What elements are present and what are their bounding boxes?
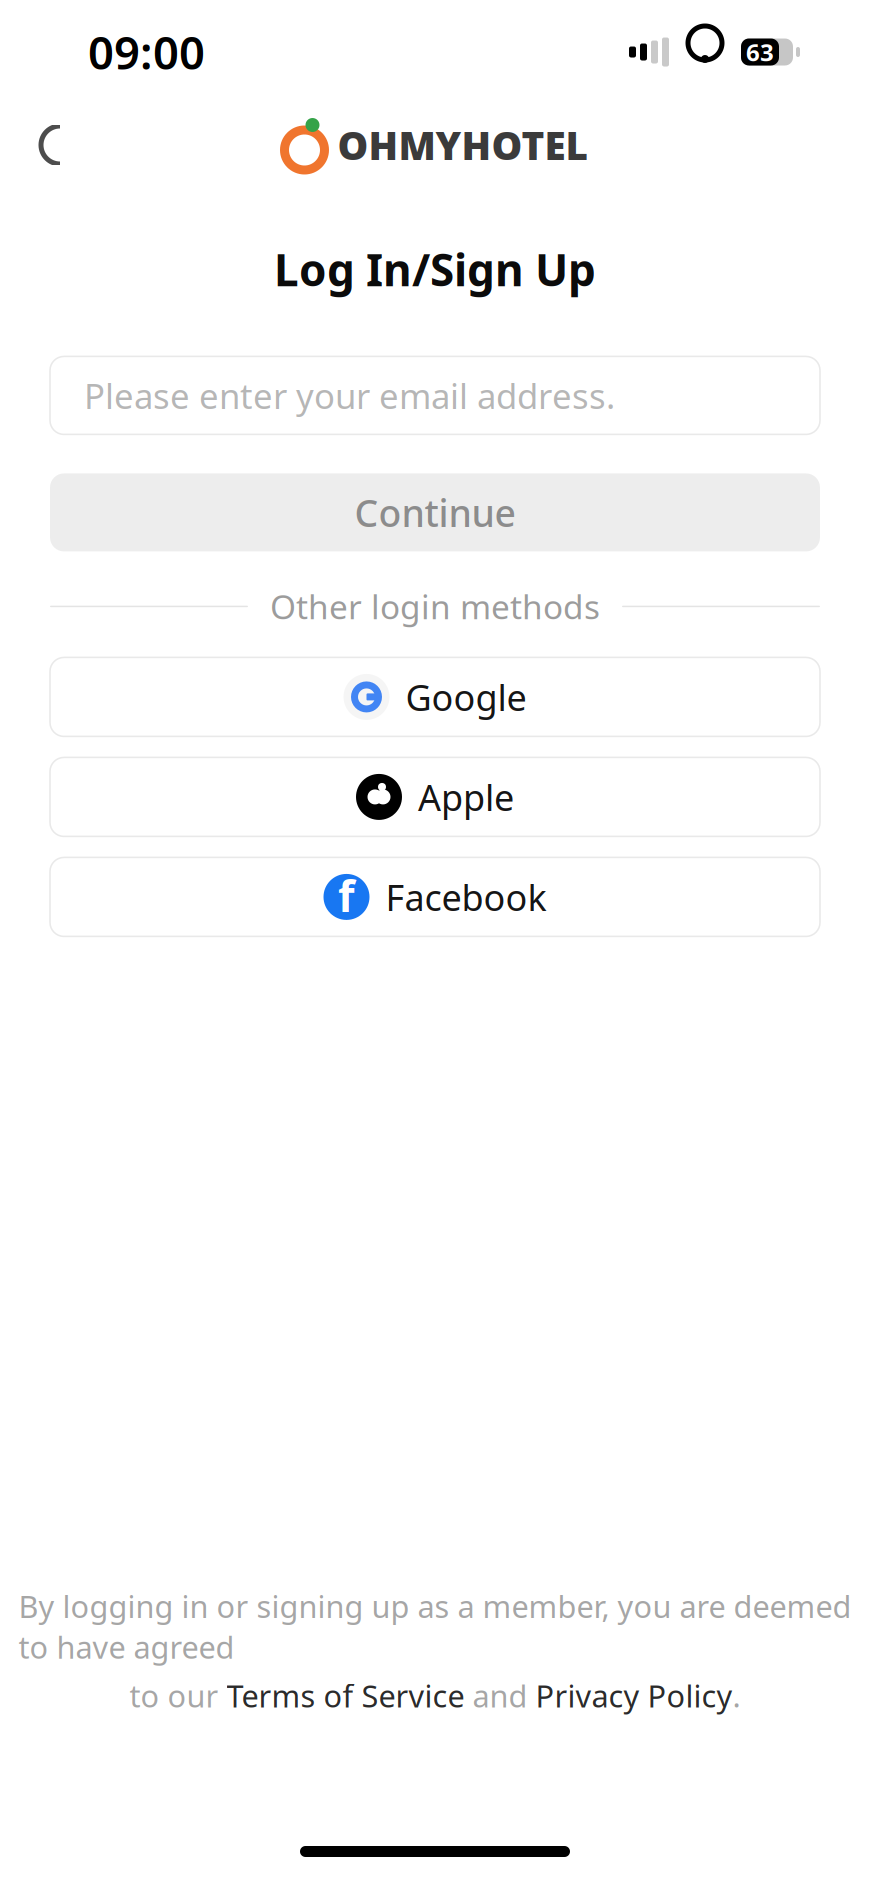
staticText: Apple: [418, 773, 514, 821]
staticText: Continue: [354, 488, 515, 537]
staticText: 63: [746, 36, 774, 68]
staticText: Facebook: [385, 873, 546, 921]
staticText: Log In/Sign Up: [274, 240, 596, 298]
staticText: .: [732, 1675, 740, 1716]
button[interactable]: Privacy Policy: [535, 1675, 732, 1716]
staticText: Google: [405, 673, 526, 721]
button[interactable]: Continue: [0, 473, 870, 551]
staticText: Please enter your email address.: [84, 372, 615, 418]
button[interactable]: f: [0, 857, 870, 936]
staticText: to our: [129, 1675, 226, 1716]
button[interactable]: Back: [8, 110, 78, 180]
staticText: and: [464, 1675, 535, 1716]
staticText: Privacy Policy: [535, 1675, 732, 1716]
staticText: f: [338, 867, 355, 924]
staticText: Other login methods: [270, 584, 600, 629]
button[interactable]: Apple: [0, 757, 870, 836]
staticText: OHMYHOTEL: [337, 119, 588, 171]
button[interactable]: Terms of Service: [226, 1675, 464, 1716]
staticText: By logging in or signing up as a member,…: [18, 1586, 851, 1667]
button[interactable]: Google: [0, 657, 870, 736]
staticText: 09:00: [88, 22, 205, 82]
staticText: Terms of Service: [226, 1675, 464, 1716]
button[interactable]: Please enter your email address.: [0, 356, 870, 434]
